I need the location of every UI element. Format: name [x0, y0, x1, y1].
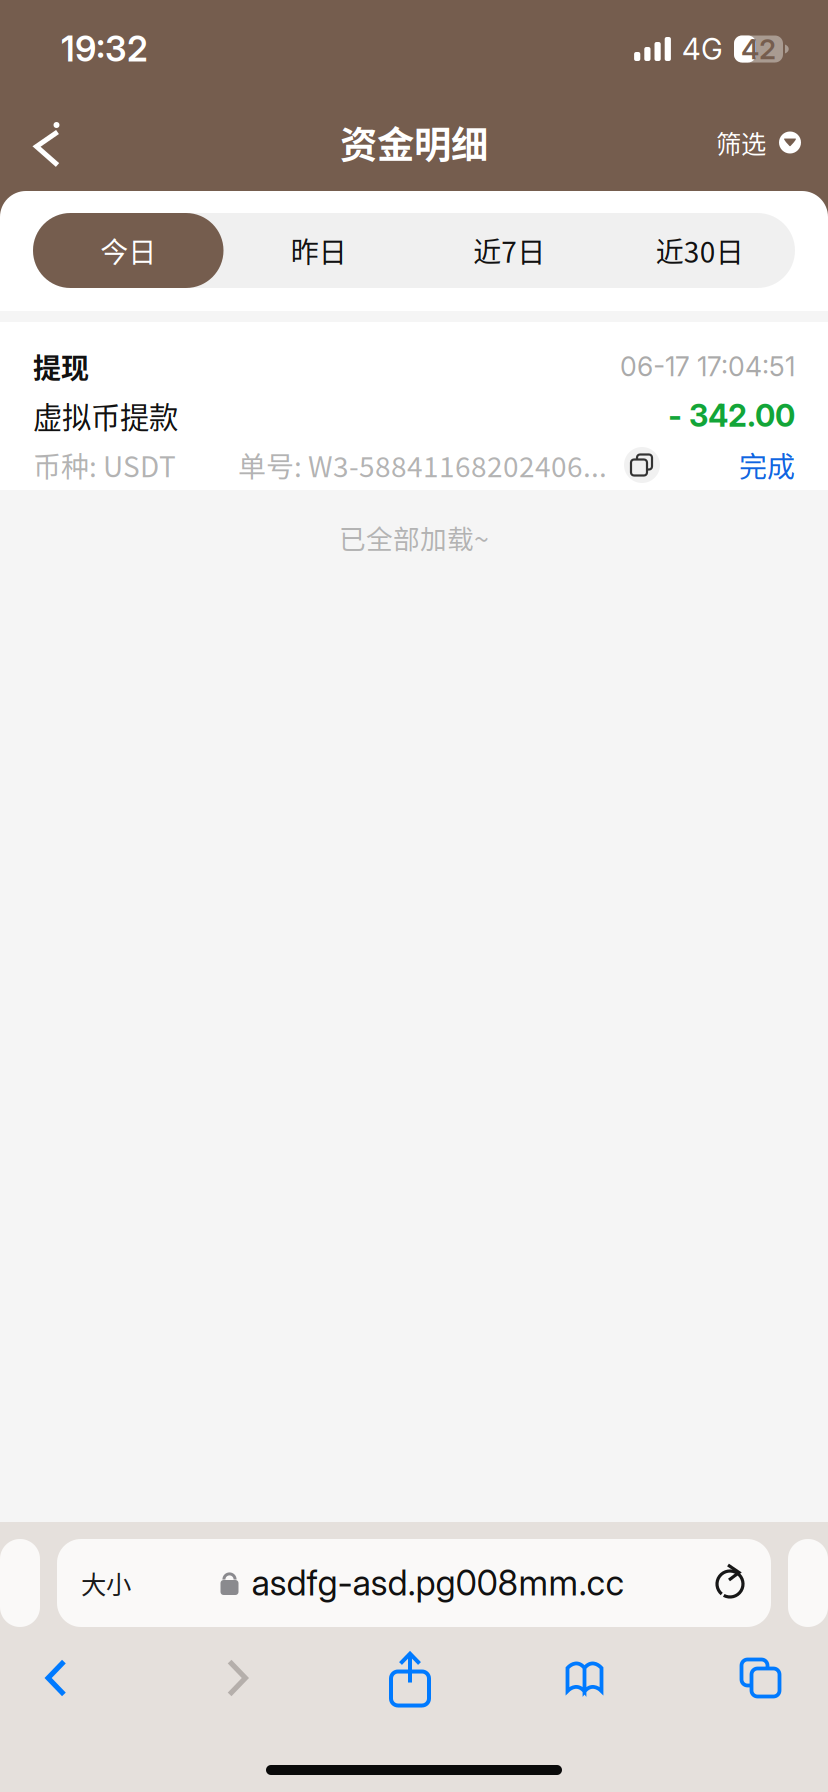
button[interactable]: Share [363, 1643, 457, 1713]
staticText: 完成 [739, 445, 795, 485]
staticText: 19:32 [61, 28, 148, 70]
button[interactable]: Forward [112, 1643, 363, 1713]
staticText: 42 [741, 32, 776, 66]
button[interactable]: 近30日 [604, 213, 795, 288]
button[interactable]: 今日 [33, 213, 223, 288]
button[interactable]: Back [0, 94, 94, 191]
button[interactable]: 昨日 [223, 213, 414, 288]
button[interactable]: 提现 [0, 322, 828, 490]
button[interactable]: Back [0, 1643, 112, 1713]
staticText: 06-17 17:04:51 [620, 350, 795, 383]
staticText: 单号: W3-58841168202406... [238, 445, 607, 485]
staticText: 提现 [33, 346, 89, 387]
staticText: 已全部加载~ [339, 518, 489, 557]
staticText: 4G [682, 31, 723, 67]
staticText: 昨日 [291, 230, 347, 271]
staticText: 筛选 [716, 124, 766, 161]
button[interactable]: Bookmarks [457, 1643, 712, 1713]
staticText: asdfg-asd.pg008mm.cc [251, 1562, 624, 1604]
button[interactable]: 近7日 [414, 213, 604, 288]
staticText: 大小 [81, 1565, 131, 1601]
staticText: 今日 [100, 230, 156, 271]
staticText: 币种: USDT [33, 445, 176, 485]
staticText: 资金明细 [340, 115, 488, 170]
staticText: 近30日 [656, 230, 744, 271]
staticText: 近7日 [473, 230, 545, 271]
button[interactable]: 筛选 [690, 94, 828, 191]
button[interactable]: 大小 [57, 1539, 771, 1627]
staticText: 虚拟币提款 [33, 394, 178, 437]
staticText: - 342.00 [668, 397, 795, 434]
button[interactable]: Tabs [712, 1643, 809, 1713]
